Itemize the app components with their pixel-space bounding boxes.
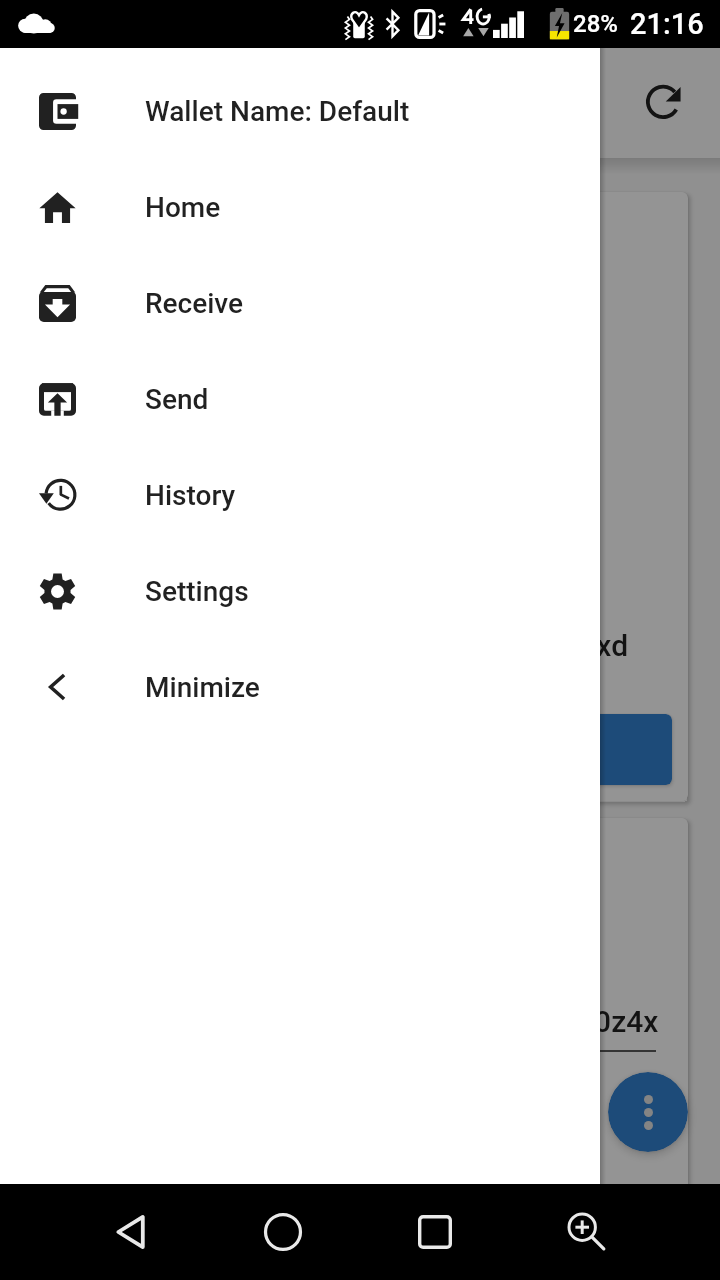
staticText: 28% [573,10,618,38]
staticText: Send [145,383,209,416]
staticText: 7a9xd [546,628,629,663]
staticText: 5q0z4x [560,1004,659,1039]
button[interactable]: Home [241,1184,325,1280]
staticText: History [145,479,236,512]
staticText: Minimize [145,671,260,704]
staticText: Home [145,191,221,224]
button[interactable] [472,714,672,785]
button[interactable]: Receive [0,255,600,351]
button[interactable]: Settings [0,543,600,639]
button[interactable]: Minimize [0,639,600,735]
button[interactable]: Send [0,351,600,447]
staticText: Wallet Name: Default [145,95,410,128]
button[interactable]: Zoom in [545,1184,629,1280]
staticText: Settings [145,575,249,608]
button[interactable]: Recents [393,1184,477,1280]
staticText: Receive [145,287,244,320]
button[interactable]: History [0,447,600,543]
button[interactable]: More options [608,1072,688,1152]
staticText: 21:16 [630,7,704,41]
button[interactable]: Back [90,1184,174,1280]
button[interactable]: Wallet Name: Default [0,63,600,159]
button[interactable]: Home [0,159,600,255]
